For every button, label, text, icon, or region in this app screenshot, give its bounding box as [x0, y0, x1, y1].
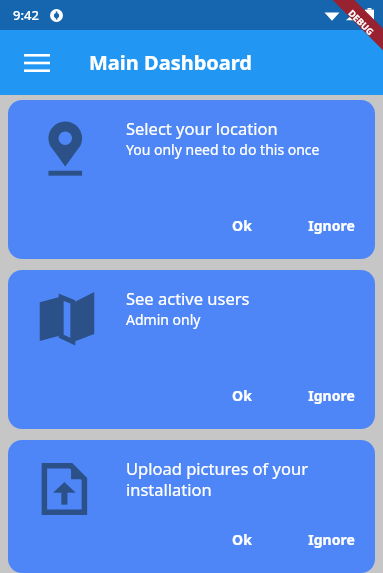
button[interactable]: Map: [8, 270, 375, 429]
button[interactable]: Ok: [220, 380, 264, 411]
staticText: Ok: [232, 386, 252, 405]
staticText: 9:42: [13, 6, 39, 24]
staticText: Admin only: [126, 310, 201, 329]
other: Upload file: [38, 460, 96, 518]
other: Map: [38, 290, 96, 348]
staticText: Ignore: [308, 530, 355, 549]
staticText: Ignore: [308, 386, 355, 405]
staticText: You only need to do this once: [126, 140, 320, 159]
button[interactable]: Ignore: [296, 210, 367, 241]
staticText: Ok: [232, 216, 252, 235]
button[interactable]: Ignore: [296, 380, 367, 411]
button[interactable]: Open navigation menu: [12, 38, 62, 88]
staticText: Ignore: [308, 216, 355, 235]
staticText: Ok: [232, 530, 252, 549]
staticText: See active users: [126, 287, 250, 309]
staticText: Main Dashboard: [89, 49, 252, 76]
button[interactable]: Ok: [220, 524, 264, 555]
staticText: DEBUG: [346, 7, 377, 37]
other: Location pin: [38, 120, 96, 178]
button[interactable]: Upload file: [8, 440, 375, 573]
button[interactable]: Location pin: [8, 100, 375, 259]
button[interactable]: Ok: [220, 210, 264, 241]
button[interactable]: Ignore: [296, 524, 367, 555]
staticText: Upload pictures of your installation: [126, 457, 361, 501]
staticText: Select your location: [126, 117, 278, 139]
